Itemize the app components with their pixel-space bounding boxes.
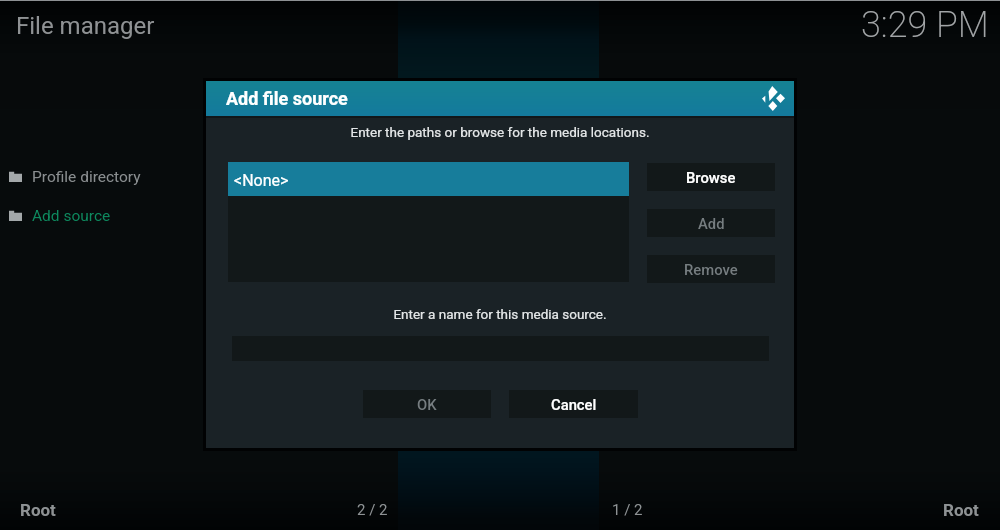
staticText: 2 / 2	[357, 501, 388, 519]
button[interactable]: <None>	[228, 162, 629, 196]
staticText: Root	[943, 500, 979, 520]
button[interactable]: Browse	[647, 163, 775, 191]
staticText: Profile directory	[32, 168, 141, 186]
staticText: Add source	[32, 207, 111, 225]
staticText: Add	[698, 215, 725, 232]
button[interactable]: Add	[647, 209, 775, 237]
staticText: OK	[417, 396, 437, 413]
staticText: Cancel	[551, 396, 597, 413]
staticText: Browse	[686, 169, 736, 186]
staticText: <None>	[234, 171, 289, 190]
staticText: Remove	[684, 261, 738, 278]
button[interactable]: Cancel	[509, 390, 638, 418]
staticText: Root	[20, 500, 56, 520]
button[interactable]: OK	[363, 390, 491, 418]
staticText: 3:29 PM	[861, 4, 989, 46]
button[interactable]: Profile directory	[0, 157, 390, 196]
staticText: Add file source	[226, 88, 348, 109]
other: Kodi	[762, 86, 785, 111]
staticText: Enter a name for this media source.	[206, 306, 794, 322]
button[interactable]: Remove	[647, 255, 775, 283]
staticText: Enter the paths or browse for the media …	[206, 124, 794, 140]
staticText: 1 / 2	[612, 501, 643, 519]
button[interactable]: Add source	[0, 196, 390, 235]
staticText: File manager	[16, 12, 155, 40]
